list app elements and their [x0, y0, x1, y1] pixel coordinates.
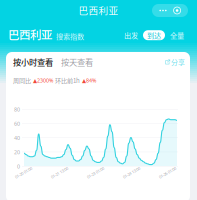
button[interactable]: 按小时查看	[13, 56, 53, 68]
staticText: 搜索指数	[56, 31, 84, 41]
staticText: 01-24 13:00	[122, 170, 141, 175]
staticText: ▲2300%	[33, 77, 53, 84]
staticText: 01-23 01:00	[86, 170, 105, 175]
staticText: 环比前1h	[55, 76, 80, 85]
button[interactable]: More and close	[152, 4, 188, 17]
button[interactable]: 到达	[143, 30, 165, 40]
staticText: 周同比	[13, 76, 31, 85]
staticText: 分享	[171, 57, 185, 67]
staticText: 出发	[124, 30, 138, 40]
staticText: 01-26 01:00	[158, 170, 177, 175]
staticText: 01-21 13:00	[50, 170, 69, 175]
staticText: 按小时查看	[13, 56, 53, 68]
staticText: 80	[14, 106, 20, 113]
staticText: 20	[14, 149, 20, 156]
button[interactable]: 分享	[165, 57, 185, 67]
staticText: 巴西利亚	[78, 3, 118, 17]
button[interactable]: 按天查看	[61, 56, 93, 68]
staticText: 60	[14, 120, 20, 127]
staticText: ▲84%	[82, 77, 96, 84]
button[interactable]: 出发	[121, 28, 141, 42]
staticText: 全量	[170, 30, 184, 40]
button[interactable]: 全量	[167, 28, 187, 42]
staticText: 巴西利亚	[8, 26, 52, 43]
staticText: 0	[17, 163, 20, 170]
staticText: 01-20 01:00	[14, 170, 33, 175]
staticText: 40	[14, 134, 20, 142]
staticText: 到达	[147, 30, 161, 40]
staticText: 按天查看	[61, 56, 93, 68]
